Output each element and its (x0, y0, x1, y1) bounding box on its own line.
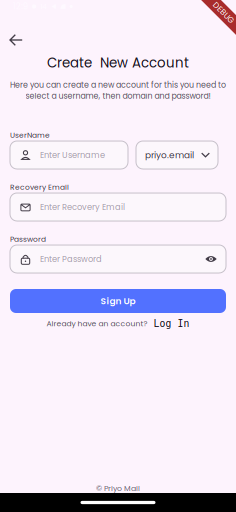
staticText: Enter Password (40, 253, 102, 265)
button[interactable]: Back (0, 28, 41, 52)
staticText: Password (10, 234, 46, 244)
staticText: priyo.email (145, 149, 194, 161)
staticText: Log In (153, 318, 189, 329)
staticText: Enter Recovery Email (40, 201, 125, 213)
staticText: Already have an account? (46, 318, 147, 329)
button[interactable]: priyo.email (136, 141, 218, 169)
staticText: © Priyo Mail (96, 483, 140, 494)
staticText: Sign Up (100, 295, 135, 307)
staticText: UserName (10, 130, 50, 140)
button[interactable]: Show password (205, 253, 217, 265)
staticText: select a username, then domain and passw… (25, 90, 210, 101)
button[interactable]: Sign Up (10, 289, 226, 313)
button[interactable]: Log In (153, 318, 189, 329)
staticText: Recovery Email (10, 182, 69, 192)
staticText: DEBUG (210, 7, 236, 18)
staticText: Create New Account (47, 53, 189, 72)
staticText: Enter Username (40, 149, 105, 161)
staticText: Here you can create a new account for th… (10, 79, 226, 90)
